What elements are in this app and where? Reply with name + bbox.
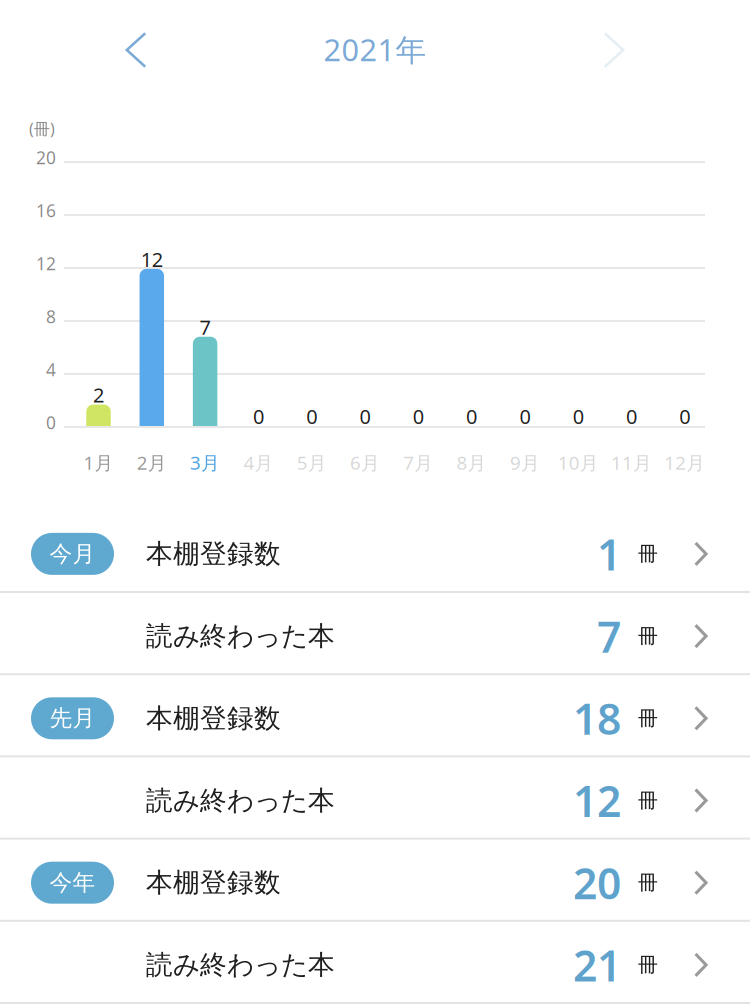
staticText: 1 bbox=[597, 526, 621, 582]
staticText: 0 bbox=[306, 403, 317, 430]
staticText: 冊 bbox=[638, 624, 658, 648]
staticText: 0 bbox=[46, 411, 56, 434]
staticText: 本棚登録数 bbox=[146, 537, 281, 570]
staticText: 11月 bbox=[611, 450, 652, 475]
staticText: 9月 bbox=[510, 450, 540, 475]
staticText: 0 bbox=[466, 403, 477, 430]
staticText: 0 bbox=[626, 403, 637, 430]
staticText: 読み終わった本 bbox=[146, 620, 335, 652]
staticText: 本棚登録数 bbox=[146, 866, 281, 899]
staticText: 冊 bbox=[638, 706, 658, 731]
staticText: 12 bbox=[141, 246, 163, 272]
staticText: (冊) bbox=[29, 118, 55, 139]
staticText: 5月 bbox=[297, 450, 327, 475]
staticText: 7月 bbox=[403, 450, 433, 475]
button[interactable]: 先月 bbox=[0, 675, 750, 757]
staticText: 0 bbox=[519, 403, 530, 430]
staticText: 読み終わった本 bbox=[146, 784, 335, 817]
button[interactable]: 前の年 bbox=[91, 5, 181, 95]
staticText: 6月 bbox=[350, 450, 380, 475]
staticText: 冊 bbox=[638, 953, 658, 977]
staticText: 本棚登録数 bbox=[146, 702, 281, 735]
staticText: 1月 bbox=[83, 450, 113, 475]
staticText: 読み終わった本 bbox=[146, 948, 335, 981]
staticText: 0 bbox=[413, 403, 424, 430]
staticText: 21 bbox=[573, 937, 621, 993]
staticText: 18 bbox=[573, 690, 621, 747]
staticText: 12 bbox=[36, 252, 56, 275]
staticText: 0 bbox=[679, 403, 690, 430]
staticText: 0 bbox=[573, 403, 584, 430]
button[interactable]: 次の年 bbox=[569, 5, 659, 95]
staticText: 8月 bbox=[457, 450, 487, 475]
staticText: 10月 bbox=[558, 450, 599, 475]
staticText: 2021年 bbox=[323, 29, 426, 70]
staticText: 今月 bbox=[49, 540, 95, 568]
staticText: 7 bbox=[200, 314, 211, 340]
staticText: 12 bbox=[573, 772, 621, 829]
staticText: 冊 bbox=[638, 542, 658, 566]
staticText: 4月 bbox=[243, 450, 273, 475]
button[interactable]: 今年 bbox=[0, 840, 750, 922]
button[interactable]: 読み終わった本 bbox=[0, 593, 750, 675]
staticText: 先月 bbox=[49, 704, 95, 732]
staticText: 20 bbox=[573, 854, 621, 911]
staticText: 冊 bbox=[638, 788, 658, 813]
button[interactable]: 読み終わった本 bbox=[0, 757, 750, 840]
staticText: 8 bbox=[46, 305, 56, 328]
staticText: 4 bbox=[46, 358, 56, 381]
staticText: 20 bbox=[36, 146, 56, 169]
staticText: 2月 bbox=[137, 450, 167, 475]
staticText: 冊 bbox=[638, 870, 658, 895]
staticText: 3月 bbox=[190, 450, 220, 475]
staticText: 12月 bbox=[664, 450, 705, 475]
staticText: 0 bbox=[253, 403, 264, 430]
staticText: 今年 bbox=[49, 869, 95, 897]
button[interactable]: 今月 bbox=[0, 511, 750, 593]
staticText: 16 bbox=[36, 199, 56, 222]
staticText: 7 bbox=[597, 608, 621, 664]
staticText: 2 bbox=[93, 382, 104, 408]
staticText: 0 bbox=[359, 403, 370, 430]
button[interactable]: 読み終わった本 bbox=[0, 922, 750, 1004]
